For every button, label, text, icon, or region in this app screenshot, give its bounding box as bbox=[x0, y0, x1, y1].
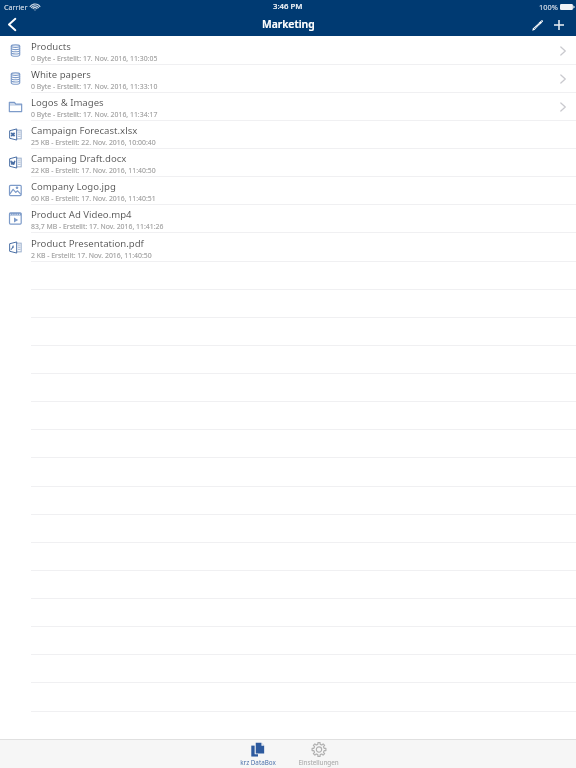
staticText: White papers bbox=[31, 68, 91, 81]
button[interactable]: White papers bbox=[0, 65, 576, 93]
staticText: 83,7 MB - Erstellt: 17. Nov. 2016, 11:41… bbox=[31, 222, 164, 231]
staticText: Einstellungen bbox=[298, 758, 339, 767]
staticText: Products bbox=[31, 40, 71, 53]
staticText: Product Presentation.pdf bbox=[31, 237, 144, 250]
staticText: 3:46 PM bbox=[273, 1, 303, 12]
staticText: 25 KB - Erstellt: 22. Nov. 2016, 10:00:4… bbox=[31, 138, 156, 147]
button[interactable]: Logos & Images bbox=[0, 93, 576, 121]
button[interactable]: Company Logo.jpg bbox=[0, 177, 576, 205]
staticText: krz DataBox bbox=[240, 758, 276, 767]
staticText: Company Logo.jpg bbox=[31, 180, 116, 193]
button[interactable]: Product Presentation.pdf bbox=[0, 233, 576, 262]
staticText: 0 Byte - Erstellt: 17. Nov. 2016, 11:33:… bbox=[31, 82, 158, 91]
staticText: 0 Byte - Erstellt: 17. Nov. 2016, 11:30:… bbox=[31, 54, 158, 63]
staticText: 0 Byte - Erstellt: 17. Nov. 2016, 11:34:… bbox=[31, 110, 158, 119]
staticText: Product Ad Video.mp4 bbox=[31, 208, 132, 221]
staticText: Marketing bbox=[262, 17, 315, 31]
button[interactable]: Back bbox=[0, 14, 24, 34]
button[interactable]: Products bbox=[0, 37, 576, 65]
staticText: Campaign Forecast.xlsx bbox=[31, 124, 138, 137]
button[interactable]: Product Ad Video.mp4 bbox=[0, 205, 576, 233]
staticText: Logos & Images bbox=[31, 96, 104, 109]
button[interactable]: Add bbox=[548, 14, 569, 36]
staticText: Carrier bbox=[4, 2, 28, 12]
button[interactable]: Edit bbox=[526, 14, 548, 36]
staticText: 22 KB - Erstellt: 17. Nov. 2016, 11:40:5… bbox=[31, 166, 156, 175]
staticText: 100% bbox=[539, 2, 558, 12]
button[interactable]: krz DataBox bbox=[227, 740, 288, 768]
staticText: Campaing Draft.docx bbox=[31, 152, 127, 165]
button[interactable]: Campaign Forecast.xlsx bbox=[0, 121, 576, 149]
button[interactable]: Campaing Draft.docx bbox=[0, 149, 576, 177]
staticText: 2 KB - Erstellt: 17. Nov. 2016, 11:40:50 bbox=[31, 251, 152, 260]
button[interactable]: Einstellungen bbox=[288, 740, 349, 768]
staticText: 60 KB - Erstellt: 17. Nov. 2016, 11:40:5… bbox=[31, 194, 156, 203]
